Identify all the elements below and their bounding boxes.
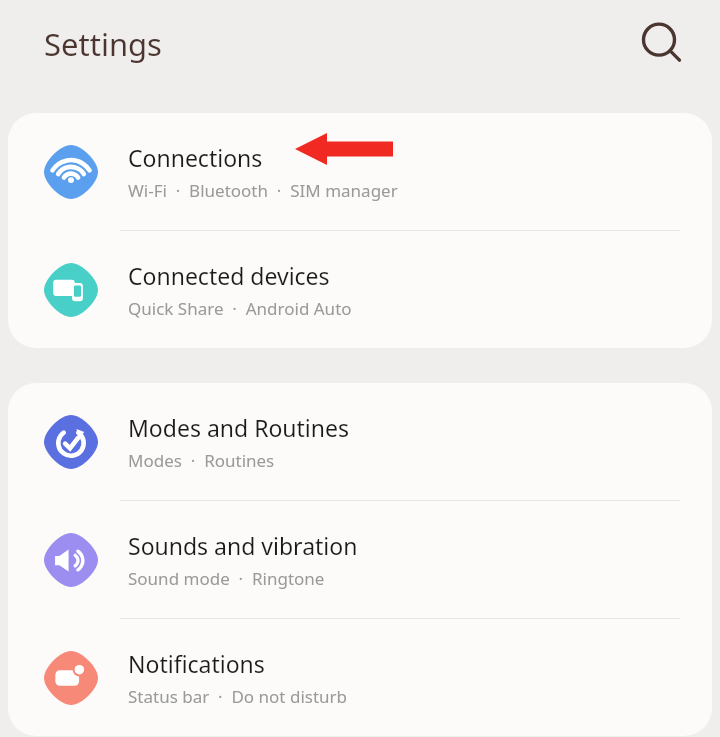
staticText: Modes and Routines xyxy=(128,412,350,443)
staticText: Modes · Routines xyxy=(128,449,275,472)
staticText: Notifications xyxy=(128,648,265,679)
staticText: Sound mode · Ringtone xyxy=(128,567,325,590)
button[interactable]: Connections xyxy=(8,113,712,230)
staticText: Wi-Fi · Bluetooth · SIM manager xyxy=(128,179,398,202)
button[interactable]: Connected devices xyxy=(8,231,712,348)
staticText: Status bar · Do not disturb xyxy=(128,685,348,708)
staticText: Sounds and vibration xyxy=(128,530,358,561)
staticText: Connected devices xyxy=(128,260,330,291)
staticText: Connections xyxy=(128,142,263,173)
button[interactable]: Sounds and vibration xyxy=(8,501,712,618)
staticText: Settings xyxy=(44,23,162,65)
staticText: Quick Share · Android Auto xyxy=(128,297,352,320)
button[interactable]: Notifications xyxy=(8,619,712,736)
button[interactable]: Modes and Routines xyxy=(8,383,712,500)
button[interactable]: Search xyxy=(625,7,693,75)
